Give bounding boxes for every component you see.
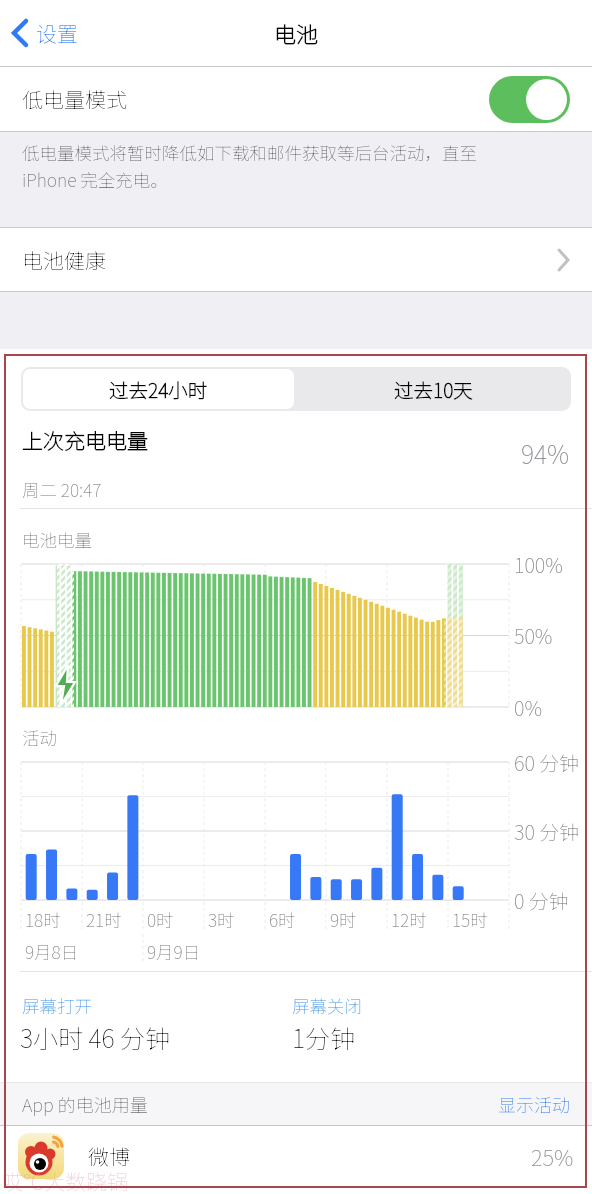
button[interactable]: 显示活动 [498,1091,570,1117]
staticText: 屏幕打开 [22,993,92,1018]
button[interactable]: 过去10天 [296,367,571,411]
staticText: 3时 [208,907,235,932]
staticText: 94% [521,435,570,471]
staticText: 18时 [25,907,61,932]
staticText: 9月8日 [25,939,79,964]
staticText: 50% [514,621,553,650]
staticText: 微博 [88,1141,130,1171]
staticText: 6时 [269,907,296,932]
staticText: 0% [514,693,543,722]
staticText: 0时 [147,907,174,932]
staticText: 设置 [36,18,78,48]
button[interactable]: 低电量模式 [22,67,570,131]
staticText: 15时 [452,907,488,932]
button[interactable]: 电池健康 [22,228,570,291]
staticText: 周二 20:47 [22,477,102,502]
staticText: 低电量模式将暂时降低如下载和邮件获取等后台活动，直至 [22,140,477,165]
staticText: 21时 [86,907,122,932]
staticText: 25% [531,1140,574,1172]
button[interactable] [489,76,570,123]
button[interactable]: 过去24小时 [23,369,294,409]
staticText: 低电量模式 [22,84,127,114]
staticText: App 的电池用量 [22,1091,148,1117]
staticText: 1分钟 [292,1019,356,1055]
staticText: 9时 [330,907,357,932]
staticText: 显示活动 [498,1091,570,1117]
staticText: 9月9日 [147,939,201,964]
staticText: 过去10天 [394,375,473,403]
staticText: 100% [514,550,563,579]
staticText: 3小时 46 分钟 [20,1019,171,1055]
button[interactable]: 设置 [10,18,78,48]
staticText: 上次充电电量 [22,425,148,455]
staticText: 哎℃大数跷锅 [2,1166,128,1194]
staticText: 0 分钟 [514,886,569,915]
staticText: 60 分钟 [514,748,580,777]
staticText: iPhone 完全充电。 [22,167,168,192]
staticText: 电池健康 [22,245,106,275]
staticText: 活动 [22,725,57,750]
staticText: 电池 [274,17,319,49]
button[interactable]: 微博 [18,1126,574,1186]
staticText: 屏幕关闭 [292,993,362,1018]
staticText: 电池电量 [22,527,92,552]
staticText: 过去24小时 [109,375,208,403]
staticText: 12时 [391,907,427,932]
staticText: 30 分钟 [514,817,580,846]
